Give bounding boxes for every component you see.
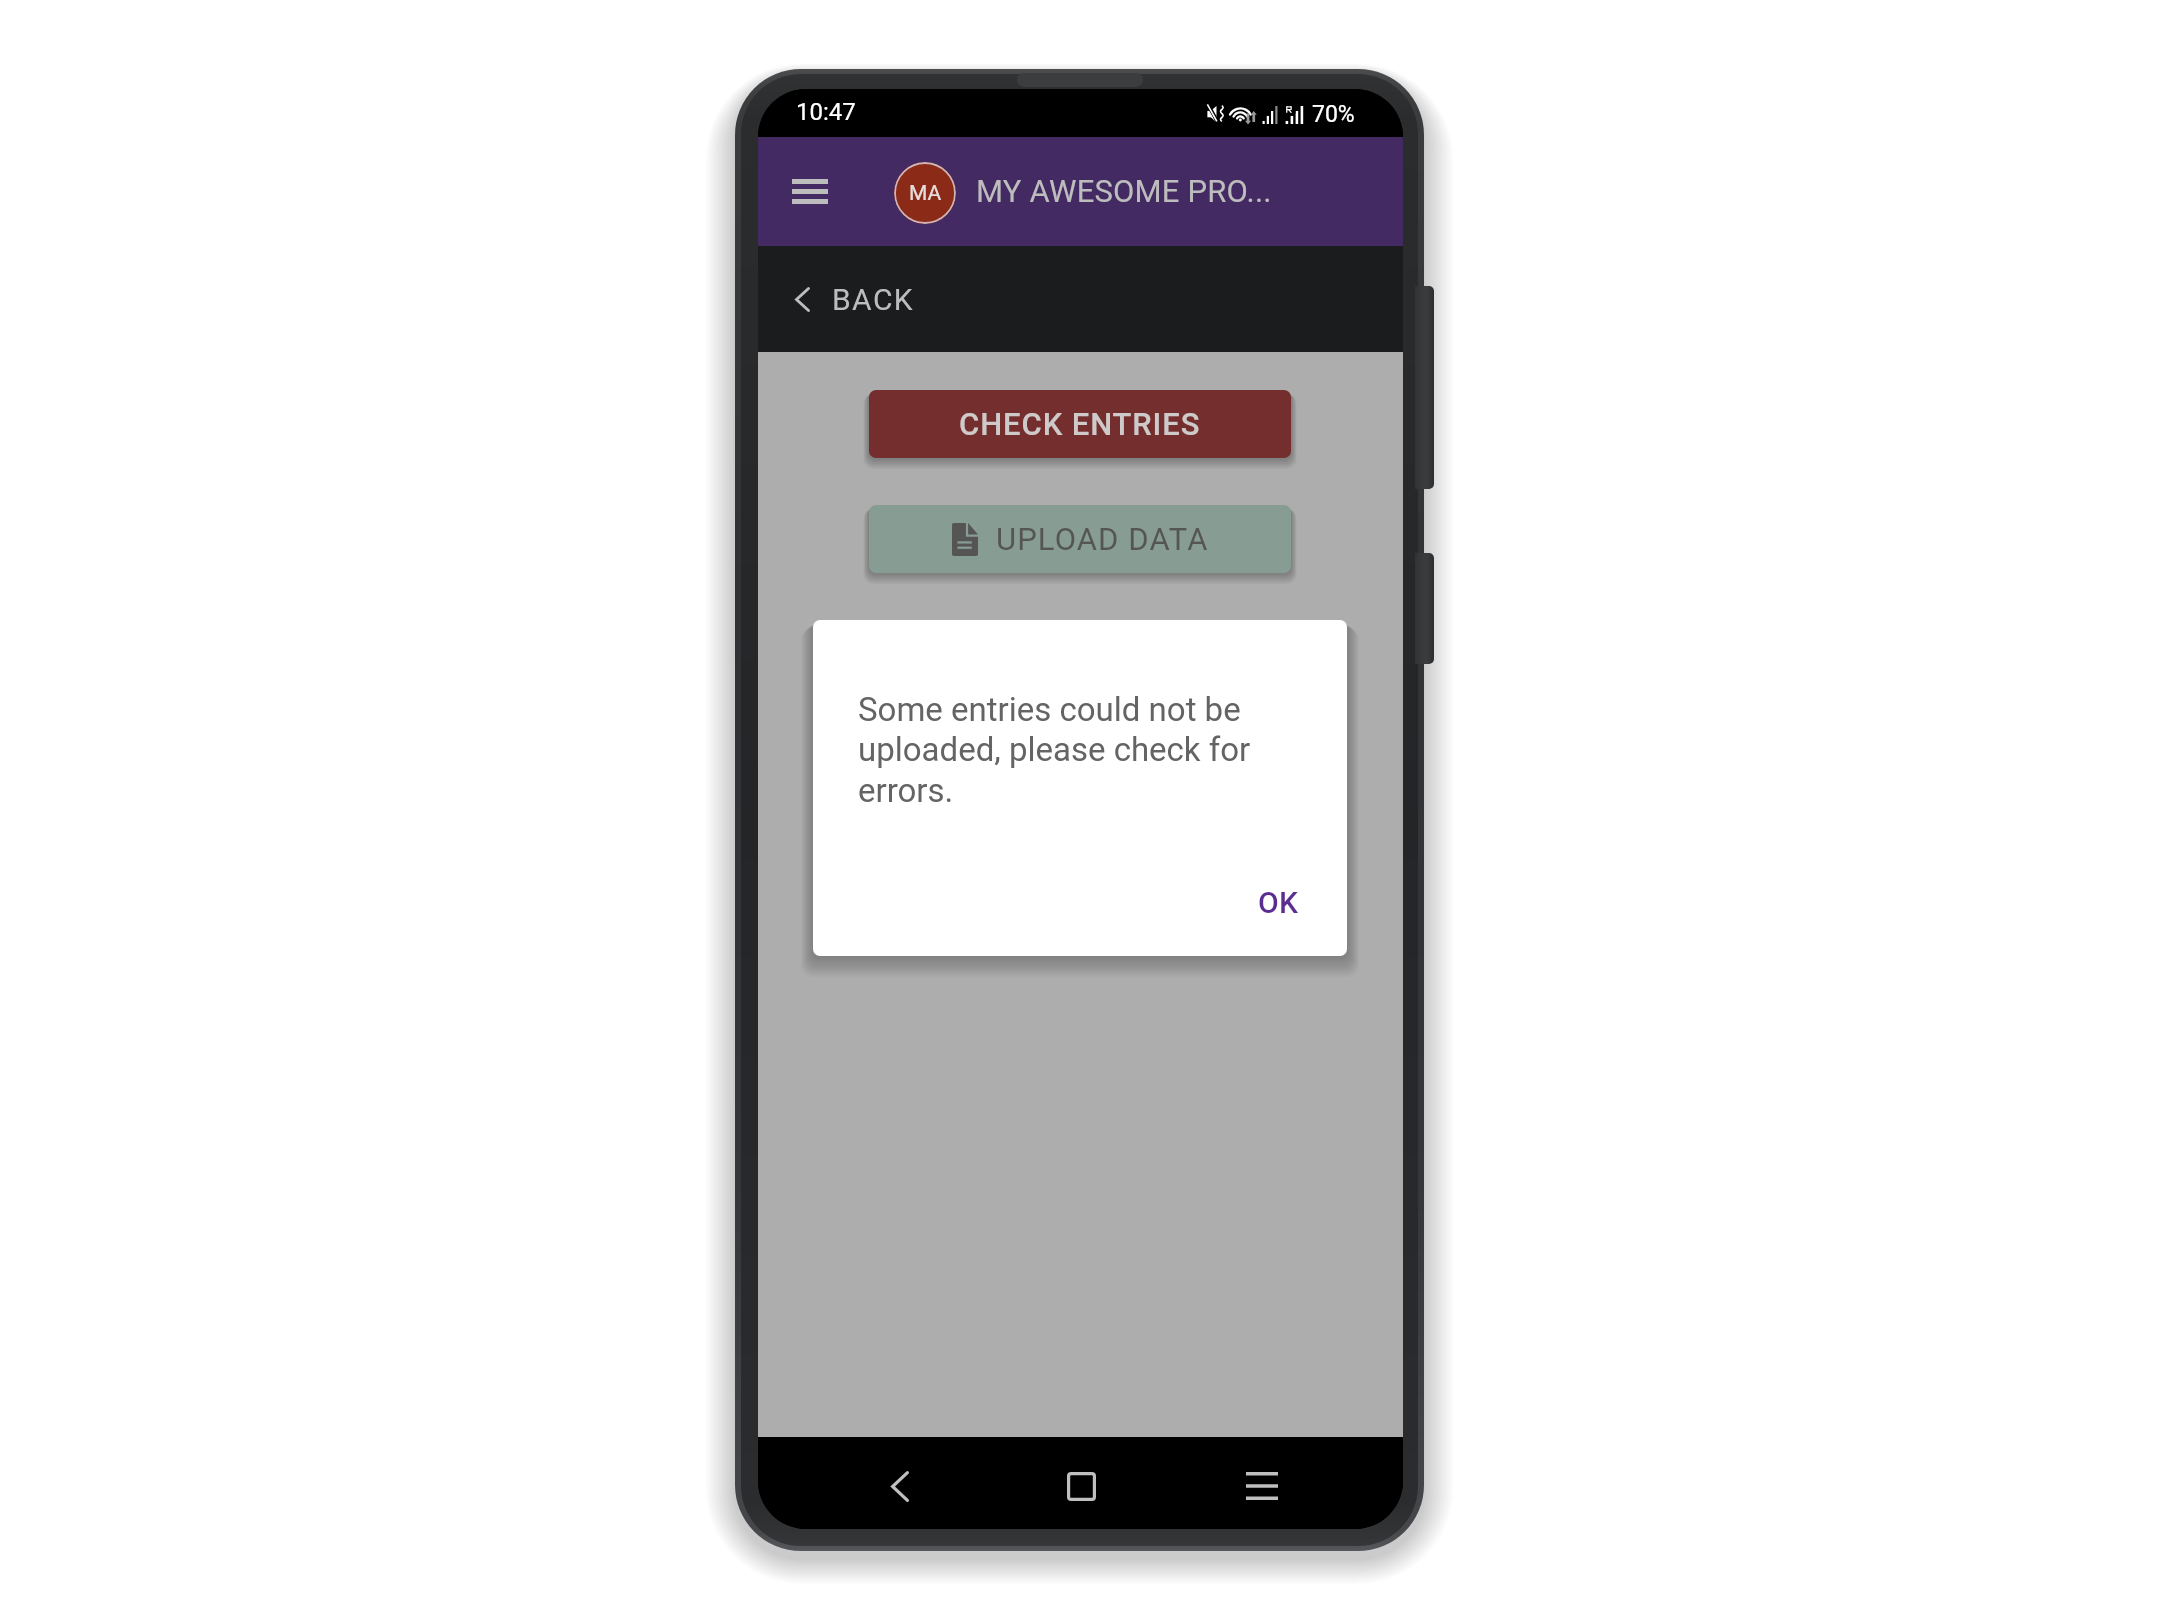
staticText: MA bbox=[909, 181, 942, 206]
button[interactable]: Back bbox=[860, 1446, 940, 1526]
staticText: MY AWESOME PRO... bbox=[976, 173, 1272, 209]
button[interactable]: Project avatar bbox=[894, 162, 956, 224]
staticText: 10:47 bbox=[796, 98, 856, 126]
button[interactable]: BACK bbox=[784, 270, 929, 329]
staticText: Some entries could not be uploaded, plea… bbox=[858, 690, 1268, 810]
staticText: UPLOAD DATA bbox=[996, 521, 1209, 557]
staticText: CHECK ENTRIES bbox=[959, 406, 1201, 442]
staticText: OK bbox=[1258, 885, 1299, 920]
button[interactable]: OK bbox=[1233, 873, 1324, 931]
staticText: 70% bbox=[1312, 101, 1355, 128]
staticText: BACK bbox=[832, 282, 915, 317]
button[interactable]: Open navigation menu bbox=[784, 165, 836, 217]
button[interactable]: UPLOAD DATA bbox=[869, 505, 1291, 573]
button[interactable]: Home bbox=[1041, 1446, 1121, 1526]
button[interactable]: Recent apps bbox=[1222, 1446, 1302, 1526]
button[interactable]: CHECK ENTRIES bbox=[869, 390, 1291, 458]
